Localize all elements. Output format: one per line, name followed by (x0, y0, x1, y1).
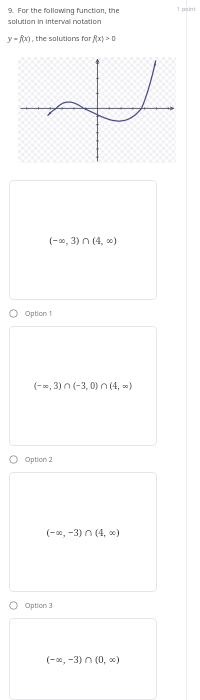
staticText: (−∞, 3) ∩ (4, ∞) (49, 234, 117, 247)
staticText: y = f(x) , the solutions for f(x) > 0 (8, 33, 116, 43)
staticText: (−∞, −3) ∩ (4, ∞) (46, 526, 120, 539)
staticText: 1 point (177, 5, 196, 13)
other: Graph of y = f(x) (18, 57, 176, 163)
staticText: Option 3 (25, 601, 53, 610)
staticText: 9. For the following function, the solut… (8, 5, 148, 26)
staticText: Option 2 (25, 455, 53, 464)
button[interactable]: (−∞, 3) ∩ (4, ∞) (9, 180, 157, 300)
button[interactable]: Option 2 (0, 446, 200, 472)
staticText: (−∞, 3) ∩ (−3, 0) ∩ (4, ∞) (34, 380, 132, 392)
button[interactable]: Option 3 (0, 592, 200, 618)
button[interactable]: Option 1 (0, 300, 200, 326)
button[interactable]: (−∞, −3) ∩ (0, ∞) (9, 618, 157, 700)
staticText: Option 1 (25, 309, 53, 318)
staticText: (−∞, −3) ∩ (0, ∞) (46, 653, 120, 666)
button[interactable]: (−∞, 3) ∩ (−3, 0) ∩ (4, ∞) (9, 326, 157, 446)
button[interactable]: (−∞, −3) ∩ (4, ∞) (9, 472, 157, 592)
